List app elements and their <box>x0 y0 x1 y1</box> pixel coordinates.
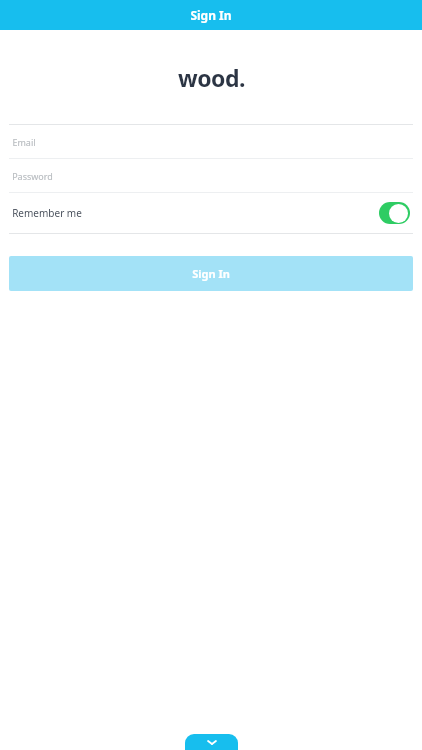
staticText: Email <box>12 136 36 148</box>
staticText: Sign In <box>192 266 230 281</box>
staticText: Sign In <box>190 7 232 23</box>
button[interactable]: Sign In <box>9 256 413 291</box>
staticText: wood. <box>178 62 245 93</box>
staticText: Password <box>12 170 53 182</box>
staticText: Remember me <box>12 206 82 220</box>
button[interactable]: Password <box>9 159 413 192</box>
button[interactable]: Email <box>9 125 413 158</box>
button[interactable]: Remember me <box>9 193 413 233</box>
button[interactable]: Remember me toggle, on <box>379 202 410 224</box>
button[interactable]: Expand <box>185 734 238 750</box>
